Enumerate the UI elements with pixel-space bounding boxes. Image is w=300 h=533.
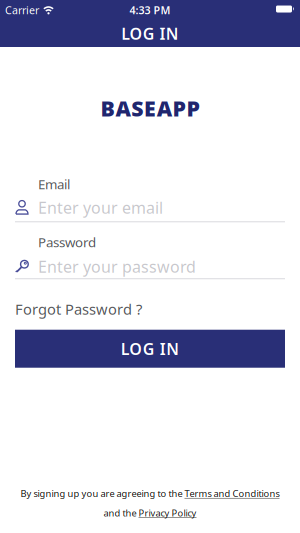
staticText: LOG IN [121,338,179,359]
staticText: Carrier [5,3,39,17]
staticText: Email [38,175,70,193]
staticText: By signing up you are agreeing to the Te… [20,487,279,500]
staticText: Enter your password [38,256,196,277]
staticText: Password [38,233,96,251]
staticText: 4:33 PM [129,3,170,17]
staticText: and the Privacy Policy [103,507,196,519]
staticText: Forgot Password ? [15,299,142,319]
staticText: Enter your email [38,197,163,218]
staticText: LOG IN [121,23,179,44]
staticText: BASEAPP [101,94,199,122]
